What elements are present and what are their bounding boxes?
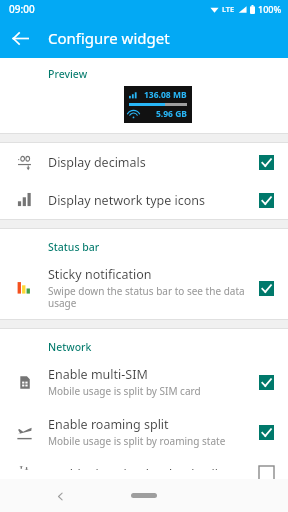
staticText: Mobile usage is split by SIM card — [48, 384, 201, 398]
staticText: Display network type icons — [48, 192, 206, 209]
staticText: Enable download/upload split — [48, 466, 223, 470]
button[interactable]: Back — [0, 18, 40, 58]
staticText: 136.08 MB — [144, 89, 187, 101]
button[interactable]: Home — [131, 493, 157, 498]
staticText: Display decimals — [48, 154, 146, 171]
staticText: Status bar — [48, 240, 288, 254]
button[interactable]: Enable download/upload split — [0, 457, 288, 479]
button[interactable]: Enable roaming split — [0, 407, 288, 457]
button[interactable]: Enable multi-SIM — [0, 357, 288, 407]
staticText: Enable roaming split — [48, 416, 169, 433]
staticText: Preview — [48, 67, 88, 81]
staticText: 5.96 GB — [156, 108, 187, 120]
button[interactable]: Back — [48, 484, 72, 508]
staticText: LTE — [222, 4, 235, 14]
staticText: 100% — [258, 3, 282, 15]
staticText: 09:00 — [9, 2, 35, 16]
button[interactable]: Display network type icons — [0, 181, 288, 219]
staticText: Swipe down the status bar to see the dat… — [48, 284, 251, 310]
button[interactable]: Sticky notification — [0, 257, 288, 319]
staticText: Configure widget — [48, 28, 170, 48]
staticText: Enable multi-SIM — [48, 366, 148, 383]
staticText: Mobile usage is split by roaming state — [48, 434, 226, 448]
staticText: Network — [48, 340, 288, 354]
staticText: Sticky notification — [48, 266, 152, 283]
button[interactable]: Display decimals — [0, 143, 288, 181]
